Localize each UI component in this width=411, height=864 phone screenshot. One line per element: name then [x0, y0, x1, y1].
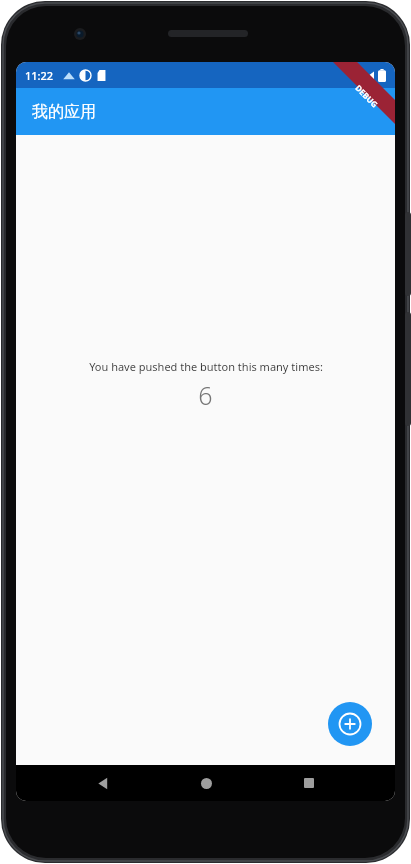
staticText: 6 [198, 378, 213, 412]
button[interactable]: Home [188, 765, 224, 801]
staticText: 我的应用 [32, 102, 96, 122]
button[interactable]: Increment [328, 702, 372, 746]
staticText: You have pushed the button this many tim… [89, 359, 323, 374]
staticText: 11:22 [25, 68, 54, 83]
button[interactable]: Back [84, 765, 120, 801]
button[interactable]: Recent apps [291, 765, 327, 801]
